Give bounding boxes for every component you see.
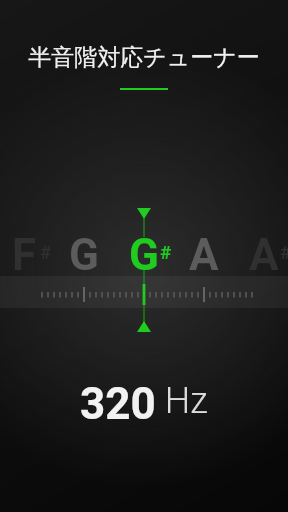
staticText: # — [280, 241, 288, 263]
staticText: # — [160, 241, 172, 263]
staticText: A — [189, 229, 219, 273]
staticText: Hz — [156, 380, 208, 422]
staticText: 半音階対応チューナー — [0, 43, 288, 72]
button[interactable]: 320 — [80, 378, 208, 422]
button[interactable]: A — [204, 230, 288, 274]
staticText: A — [249, 229, 279, 273]
staticText: G — [69, 229, 99, 273]
staticText: F — [12, 229, 37, 273]
button[interactable]: 半音階対応チューナー — [0, 40, 288, 74]
staticText: # — [40, 241, 52, 263]
staticText: G — [129, 229, 159, 273]
button[interactable]: G — [84, 230, 204, 274]
button[interactable]: A — [144, 230, 264, 274]
staticText: 320 — [80, 378, 156, 422]
button[interactable]: G — [24, 230, 144, 274]
button[interactable]: F — [0, 230, 84, 274]
